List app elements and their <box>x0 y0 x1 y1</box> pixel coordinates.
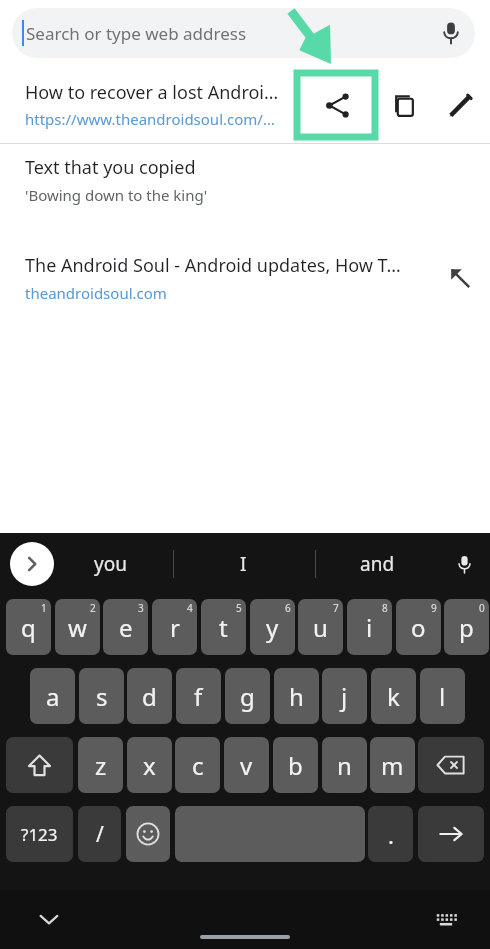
staticText: r <box>170 611 180 644</box>
button[interactable]: z <box>78 737 123 793</box>
staticText: m <box>381 749 404 782</box>
button[interactable]: Edit <box>432 76 490 134</box>
staticText: e <box>119 611 133 644</box>
staticText: ?123 <box>21 823 58 846</box>
staticText: u <box>313 611 328 644</box>
staticText: 4 <box>187 601 193 615</box>
button[interactable]: Hide keyboard <box>26 896 72 942</box>
staticText: 6 <box>285 601 291 615</box>
staticText: you <box>94 551 127 577</box>
staticText: l <box>439 680 446 713</box>
button[interactable]: o <box>396 599 441 655</box>
staticText: Text that you copied <box>25 155 196 180</box>
staticText: x <box>143 749 156 782</box>
staticText: a <box>46 680 60 713</box>
button[interactable]: w <box>55 599 100 655</box>
button[interactable]: ?123 <box>6 806 73 862</box>
button[interactable]: c <box>175 737 220 793</box>
staticText: and <box>360 551 395 577</box>
staticText: y <box>266 611 279 644</box>
button[interactable]: i <box>347 599 392 655</box>
staticText: 'Bowing down to the king' <box>25 185 208 205</box>
staticText: p <box>459 611 474 644</box>
button[interactable]: a <box>30 668 75 724</box>
staticText: . <box>388 820 394 850</box>
button[interactable]: p <box>444 599 489 655</box>
button[interactable]: n <box>322 737 367 793</box>
staticText: / <box>96 820 104 849</box>
staticText: Search or type web address <box>26 22 247 45</box>
staticText: q <box>21 611 36 644</box>
button[interactable]: r <box>152 599 197 655</box>
button[interactable]: Backspace <box>418 737 484 793</box>
button[interactable]: u <box>298 599 343 655</box>
staticText: f <box>194 680 203 713</box>
button[interactable]: b <box>273 737 318 793</box>
button[interactable]: The Android Soul - Android updates, How … <box>0 242 490 314</box>
button[interactable]: Voice search <box>429 11 473 55</box>
button[interactable]: Emoji <box>126 806 170 862</box>
button[interactable]: you <box>65 539 155 589</box>
staticText: 1 <box>41 601 47 615</box>
staticText: o <box>411 611 426 644</box>
button[interactable]: m <box>370 737 415 793</box>
staticText: c <box>192 749 204 782</box>
button[interactable]: Text that you copied <box>0 144 490 216</box>
button[interactable]: s <box>79 668 124 724</box>
button[interactable]: Voice input <box>443 543 485 585</box>
staticText: w <box>68 611 87 644</box>
staticText: 9 <box>431 601 437 615</box>
button[interactable]: Switch keyboard <box>423 896 469 942</box>
button[interactable]: l <box>420 668 465 724</box>
staticText: z <box>95 749 107 782</box>
staticText: b <box>288 749 303 782</box>
button[interactable]: / <box>78 806 121 862</box>
staticText: 7 <box>333 601 339 615</box>
button[interactable]: More suggestions <box>10 542 54 586</box>
staticText: t <box>219 611 228 644</box>
button[interactable]: g <box>225 668 270 724</box>
button[interactable]: and <box>332 539 422 589</box>
button[interactable]: Space <box>175 806 365 862</box>
staticText: theandroidsoul.com <box>25 283 167 303</box>
button[interactable]: y <box>250 599 295 655</box>
button[interactable]: e <box>103 599 148 655</box>
button[interactable]: t <box>201 599 246 655</box>
staticText: 3 <box>138 601 144 615</box>
staticText: g <box>240 680 255 713</box>
staticText: s <box>96 680 108 713</box>
staticText: i <box>366 611 373 644</box>
button[interactable]: f <box>176 668 221 724</box>
button[interactable]: Insert suggestion <box>430 248 490 308</box>
staticText: The Android Soul - Android updates, How … <box>25 253 401 278</box>
button[interactable]: Share <box>298 73 376 137</box>
button[interactable]: How to recover a lost Androi… <box>25 80 292 129</box>
staticText: d <box>142 680 157 713</box>
staticText: k <box>387 680 400 713</box>
staticText: 8 <box>382 601 388 615</box>
button[interactable]: Shift <box>6 737 73 793</box>
button[interactable]: q <box>6 599 51 655</box>
button[interactable]: . <box>368 806 413 862</box>
staticText: h <box>289 680 304 713</box>
staticText: j <box>341 680 348 713</box>
button[interactable]: v <box>224 737 269 793</box>
button[interactable]: k <box>371 668 416 724</box>
button[interactable]: h <box>274 668 319 724</box>
staticText: n <box>337 749 352 782</box>
button[interactable]: j <box>322 668 367 724</box>
button[interactable]: Copy <box>376 77 432 133</box>
staticText: I <box>240 551 247 577</box>
button[interactable]: Search or type web address <box>12 8 475 58</box>
button[interactable]: I <box>198 539 288 589</box>
staticText: 2 <box>90 601 96 615</box>
staticText: 0 <box>479 601 485 615</box>
staticText: https://www.theandroidsoul.com/… <box>25 109 275 129</box>
staticText: v <box>240 749 253 782</box>
button[interactable]: x <box>127 737 172 793</box>
staticText: 5 <box>236 601 242 615</box>
staticText: How to recover a lost Androi… <box>25 80 279 105</box>
button[interactable]: d <box>127 668 172 724</box>
button[interactable]: Enter <box>418 806 484 862</box>
